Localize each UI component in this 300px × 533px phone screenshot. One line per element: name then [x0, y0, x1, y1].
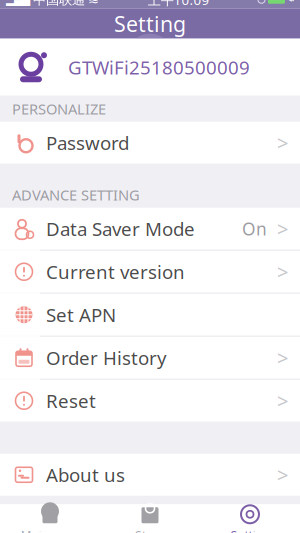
button[interactable]: Password — [0, 122, 300, 164]
button[interactable]: Reset — [0, 380, 300, 422]
staticText: Main page — [20, 527, 79, 533]
staticText: GTWiFi25180500009 — [68, 55, 250, 80]
button[interactable]: Order History — [0, 337, 300, 380]
staticText: 上午10:09 — [147, 0, 209, 9]
button[interactable]: Current version — [0, 251, 300, 294]
staticText: ADVANCE SETTING — [12, 185, 140, 204]
staticText: ▂▄▆ — [6, 0, 30, 6]
staticText: > — [277, 129, 288, 156]
staticText: Data Saver Mode — [46, 216, 195, 241]
button[interactable]: Store — [100, 504, 200, 533]
staticText: Setting — [230, 527, 269, 533]
staticText: Setting — [114, 10, 186, 38]
staticText: Reset — [46, 388, 96, 413]
staticText: Set APN — [46, 302, 116, 327]
staticText: PERSONALIZE — [12, 99, 106, 118]
staticText: > — [277, 461, 288, 488]
staticText: 中国联通 — [33, 0, 85, 8]
staticText: > — [277, 215, 288, 242]
staticText: On — [242, 217, 267, 240]
staticText: ⌁ — [288, 0, 294, 6]
button[interactable]: Setting — [200, 504, 300, 533]
staticText: Order History — [46, 345, 167, 370]
button[interactable]: Set APN — [0, 294, 300, 337]
staticText: Current version — [46, 259, 185, 284]
staticText: > — [277, 258, 288, 285]
button[interactable]: About us — [0, 454, 300, 496]
staticText: ≋ — [88, 0, 99, 7]
button[interactable]: Data Saver Mode — [0, 208, 300, 251]
staticText: About us — [46, 462, 125, 487]
staticText: > — [277, 387, 288, 414]
staticText: Password — [46, 130, 129, 155]
staticText: > — [277, 344, 288, 371]
button[interactable]: Main page — [0, 504, 100, 533]
staticText: Store — [135, 527, 165, 533]
